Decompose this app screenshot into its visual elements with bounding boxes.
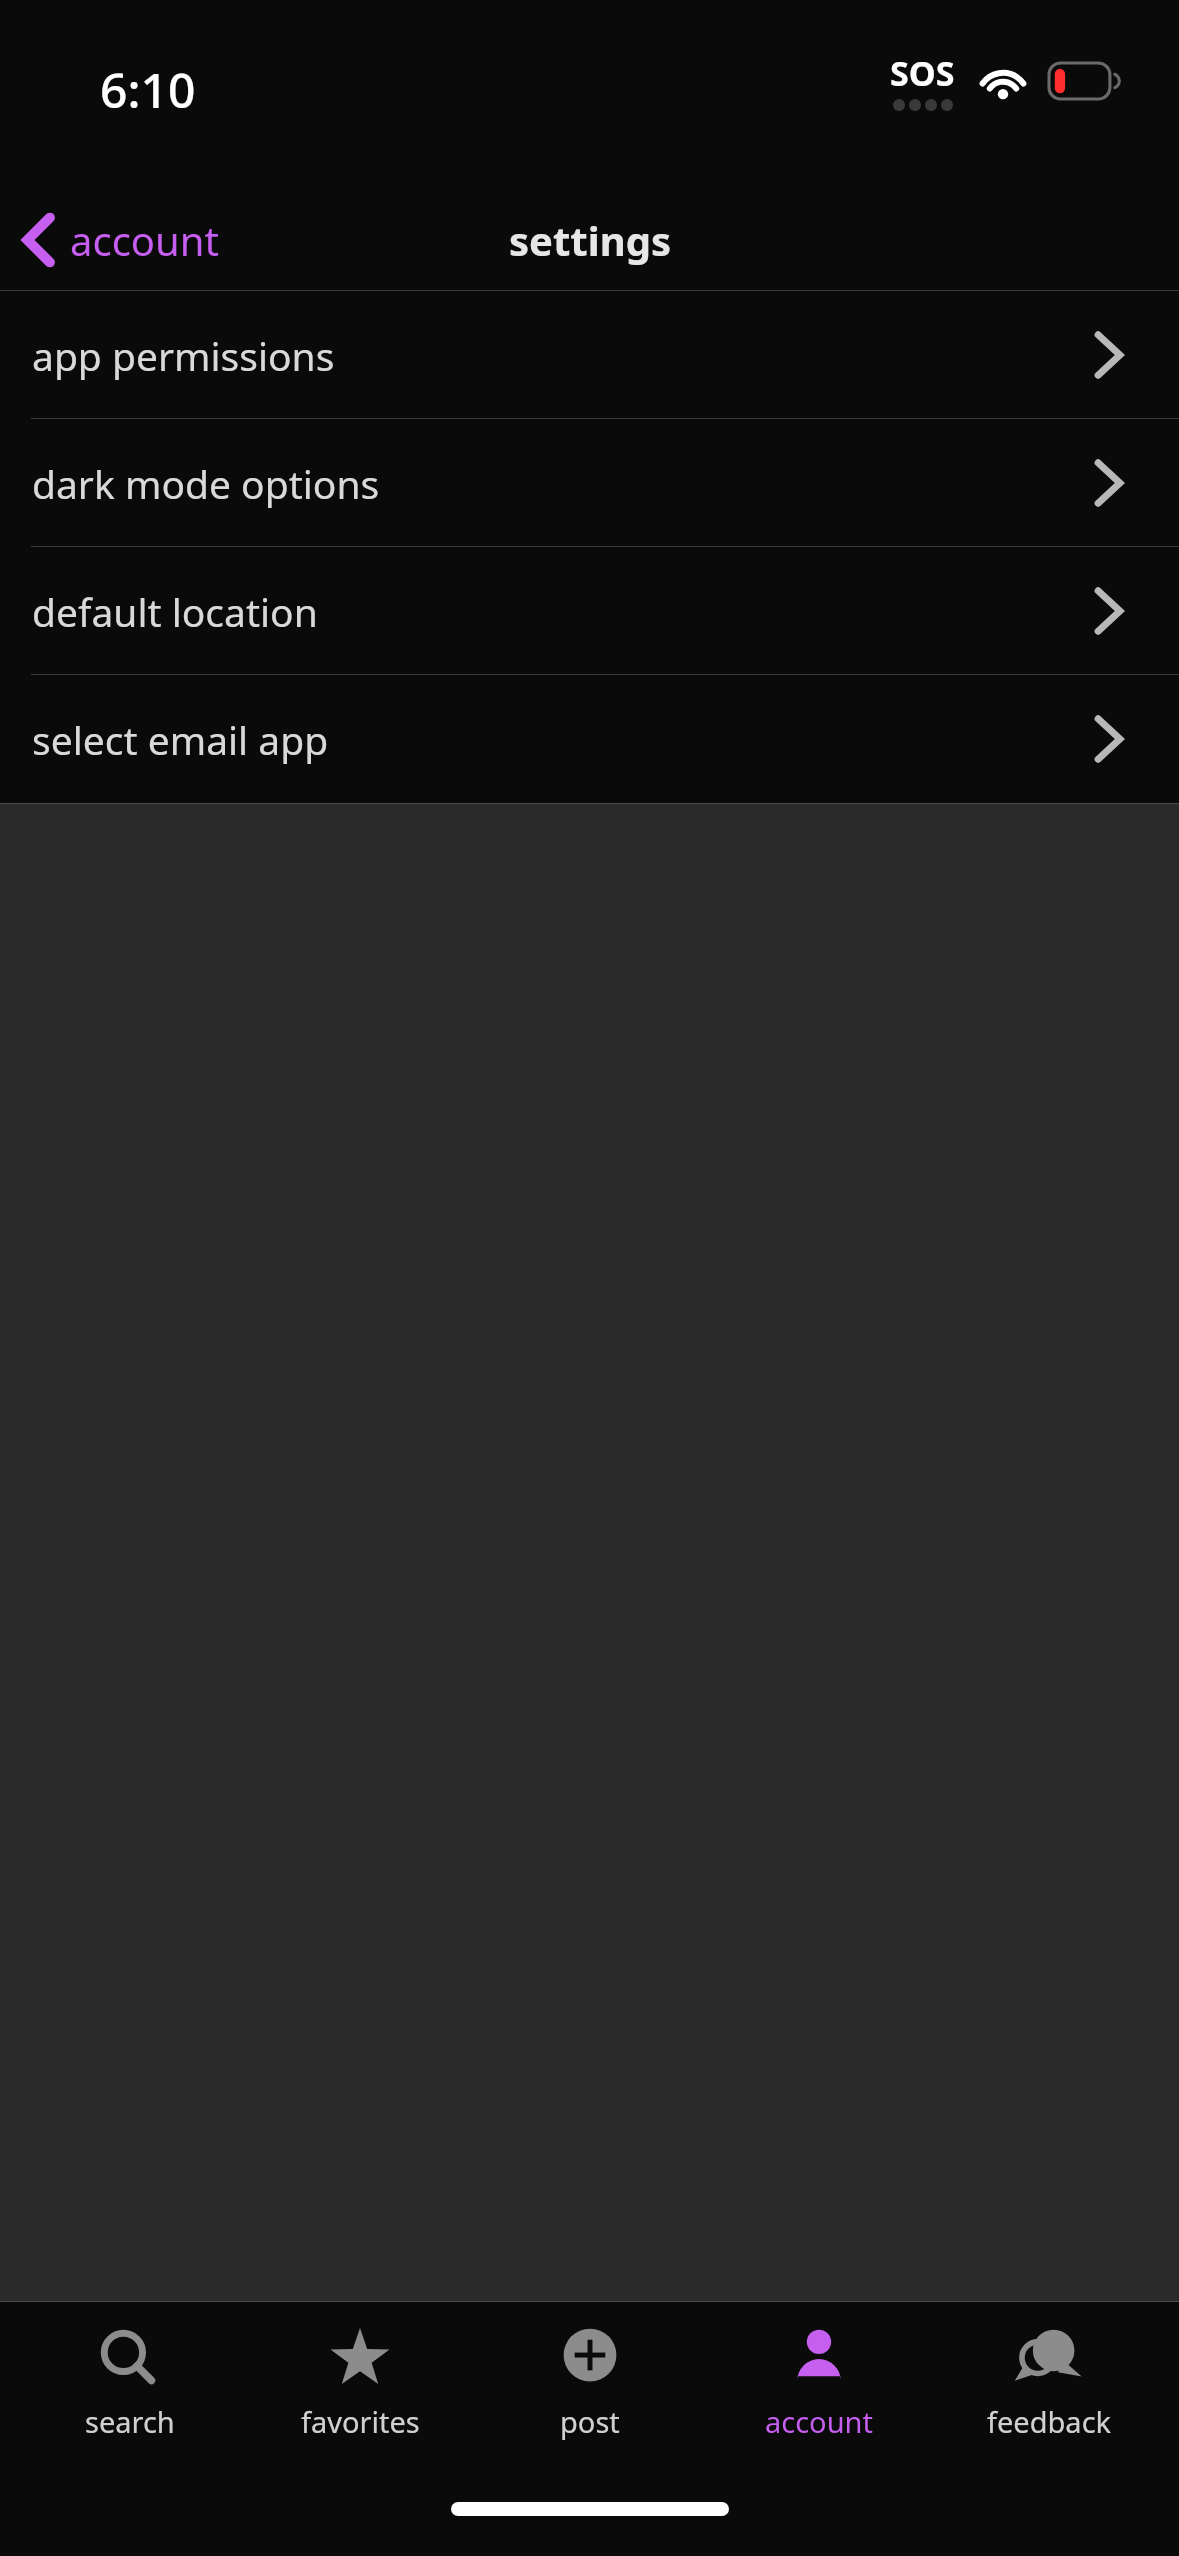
staticText: dark mode options [32,457,380,510]
staticText: default location [32,585,318,638]
staticText: settings [509,213,671,267]
staticText: feedback [987,2402,1112,2441]
button[interactable]: Back [0,205,235,275]
other: Back [22,214,56,266]
button[interactable]: app permissions [0,291,1179,419]
staticText: account [70,213,219,267]
staticText: select email app [32,713,329,766]
button[interactable]: favorites [260,2302,460,2441]
button[interactable]: search [30,2302,230,2441]
staticText: favorites [301,2402,420,2441]
staticText: account [765,2402,873,2441]
button[interactable]: dark mode options [0,419,1179,547]
staticText: SOS [890,50,955,96]
button[interactable]: select email app [0,675,1179,803]
staticText: app permissions [32,329,335,382]
button[interactable]: post [490,2302,690,2441]
staticText: search [85,2402,175,2441]
button[interactable]: feedback [949,2302,1149,2441]
staticText: post [560,2402,620,2441]
button[interactable]: account [719,2302,919,2441]
staticText: 6:10 [100,57,196,122]
button[interactable]: default location [0,547,1179,675]
